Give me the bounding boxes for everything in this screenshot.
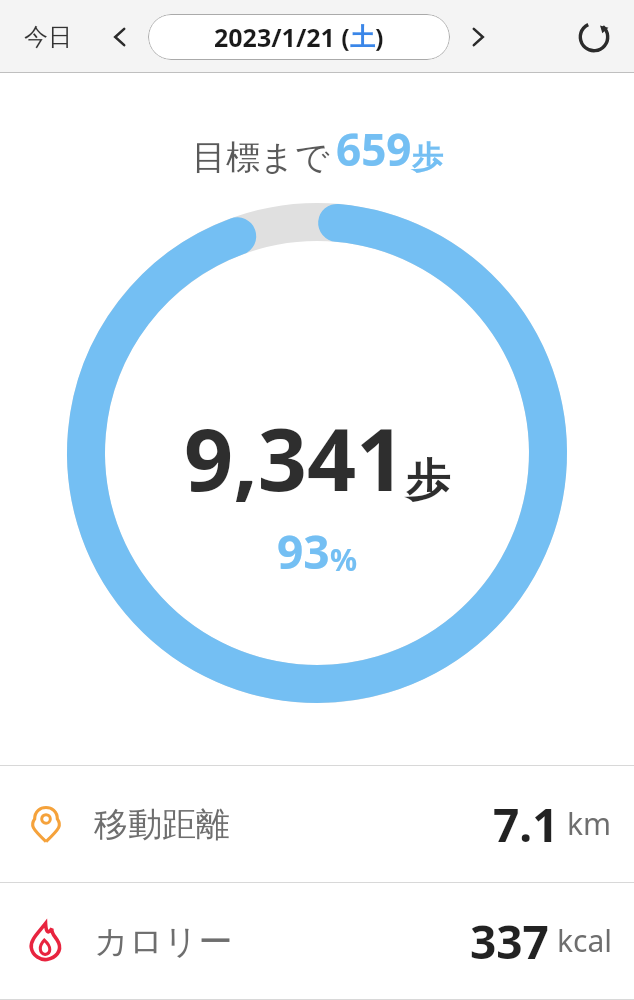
staticText: 7.1 xyxy=(493,793,559,856)
staticText: kcal xyxy=(557,920,612,961)
staticText: 659 xyxy=(336,119,412,179)
other: Calories xyxy=(22,917,70,965)
staticText: 土 xyxy=(350,22,375,53)
staticText: 目標まで xyxy=(192,136,330,179)
button[interactable]: 2023/1/21 ( xyxy=(148,14,450,60)
staticText: 歩 xyxy=(412,138,443,177)
staticText: 今日 xyxy=(24,22,72,52)
button[interactable]: 今日 xyxy=(14,16,82,58)
staticText: 2023/1/21 ( xyxy=(214,20,350,54)
button[interactable]: Refresh xyxy=(568,11,620,63)
button[interactable]: Next day xyxy=(456,15,500,59)
staticText: 93 xyxy=(277,520,330,583)
staticText: % xyxy=(330,539,358,580)
staticText: カロリー xyxy=(94,920,233,963)
button[interactable]: Calories xyxy=(0,883,634,999)
staticText: ) xyxy=(375,20,384,54)
staticText: km xyxy=(567,803,612,844)
staticText: 9,341 xyxy=(184,399,406,516)
staticText: 歩 xyxy=(406,453,450,508)
button[interactable]: Distance xyxy=(0,766,634,882)
button[interactable]: Previous day xyxy=(98,15,142,59)
other: Distance xyxy=(22,800,70,848)
staticText: 337 xyxy=(470,910,549,973)
staticText: 移動距離 xyxy=(94,803,230,846)
